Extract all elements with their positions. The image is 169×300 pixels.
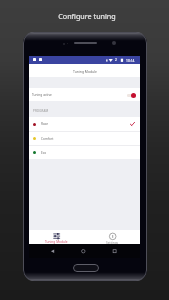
button[interactable]: Home: [73, 264, 99, 272]
staticText: Configure tuning: [58, 11, 116, 21]
staticText: Race: [41, 122, 49, 126]
staticText: Settings: [106, 241, 119, 244]
staticText: Comfort: [41, 137, 54, 141]
button[interactable]: Race: [29, 117, 140, 131]
button[interactable]: Eco: [29, 146, 140, 159]
button[interactable]: Tuning active: [29, 88, 140, 101]
button[interactable]: Tuning Module: [29, 230, 84, 244]
staticText: Tuning Module: [45, 240, 68, 244]
staticText: PROGRAM: [33, 109, 49, 113]
button[interactable]: Settings: [84, 230, 140, 244]
staticText: 2: [115, 58, 117, 62]
staticText: Tuning active: [32, 93, 52, 97]
button[interactable]: Comfort: [29, 132, 140, 145]
staticText: Eco: [41, 151, 47, 155]
staticText: Tuning Module: [73, 69, 97, 74]
staticText: 10:14: [126, 58, 135, 62]
